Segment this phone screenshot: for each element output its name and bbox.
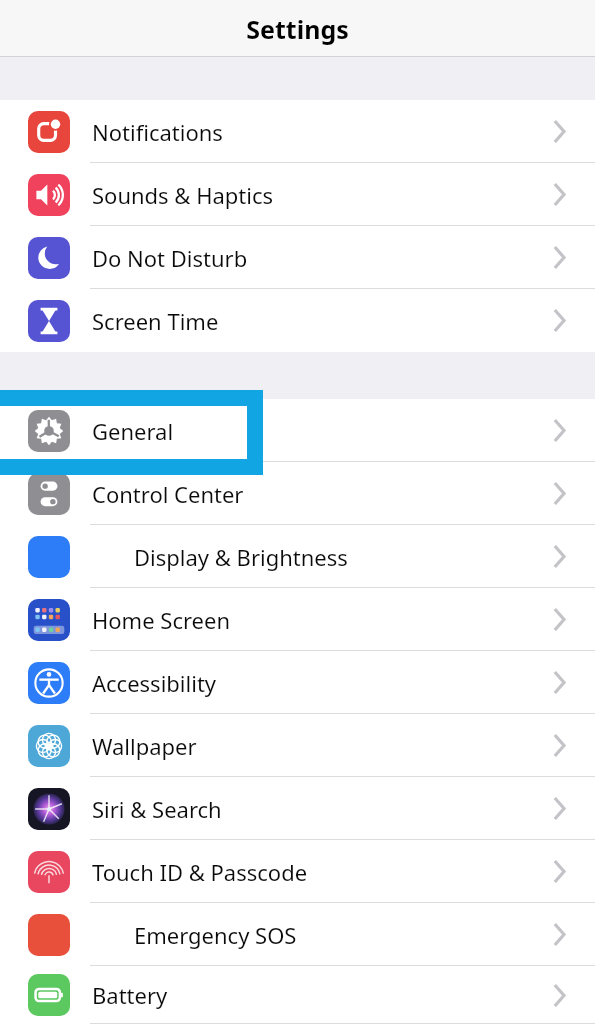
staticText: Settings bbox=[246, 12, 349, 46]
staticText: Notifications bbox=[92, 117, 223, 147]
button[interactable]: Sounds & Haptics bbox=[0, 163, 595, 226]
staticText: General bbox=[92, 416, 174, 446]
staticText: Wallpaper bbox=[92, 731, 197, 761]
button[interactable]: Do Not Disturb bbox=[0, 226, 595, 289]
staticText: Screen Time bbox=[92, 306, 219, 336]
button[interactable]: Control Center bbox=[0, 462, 595, 525]
button[interactable]: Touch ID & Passcode bbox=[0, 840, 595, 903]
staticText: Do Not Disturb bbox=[92, 243, 248, 273]
button[interactable]: Wallpaper bbox=[0, 714, 595, 777]
staticText: Touch ID & Passcode bbox=[92, 857, 308, 887]
button[interactable]: Home Screen bbox=[0, 588, 595, 651]
button[interactable]: General bbox=[0, 399, 595, 462]
button[interactable]: SOS bbox=[0, 903, 595, 966]
staticText: Emergency SOS bbox=[134, 920, 297, 950]
button[interactable]: Accessibility bbox=[0, 651, 595, 714]
button[interactable]: Battery bbox=[0, 966, 595, 1024]
staticText: Battery bbox=[92, 980, 168, 1010]
staticText: Sounds & Haptics bbox=[92, 180, 274, 210]
staticText: Siri & Search bbox=[92, 794, 222, 824]
staticText: Display & Brightness bbox=[134, 542, 348, 572]
button[interactable]: Screen Time bbox=[0, 289, 595, 352]
button[interactable]: Siri & Search bbox=[0, 777, 595, 840]
staticText: Control Center bbox=[92, 479, 244, 509]
button[interactable]: Notifications bbox=[0, 100, 595, 163]
staticText: Accessibility bbox=[92, 668, 217, 698]
staticText: Home Screen bbox=[92, 605, 231, 635]
button[interactable]: AA bbox=[0, 525, 595, 588]
